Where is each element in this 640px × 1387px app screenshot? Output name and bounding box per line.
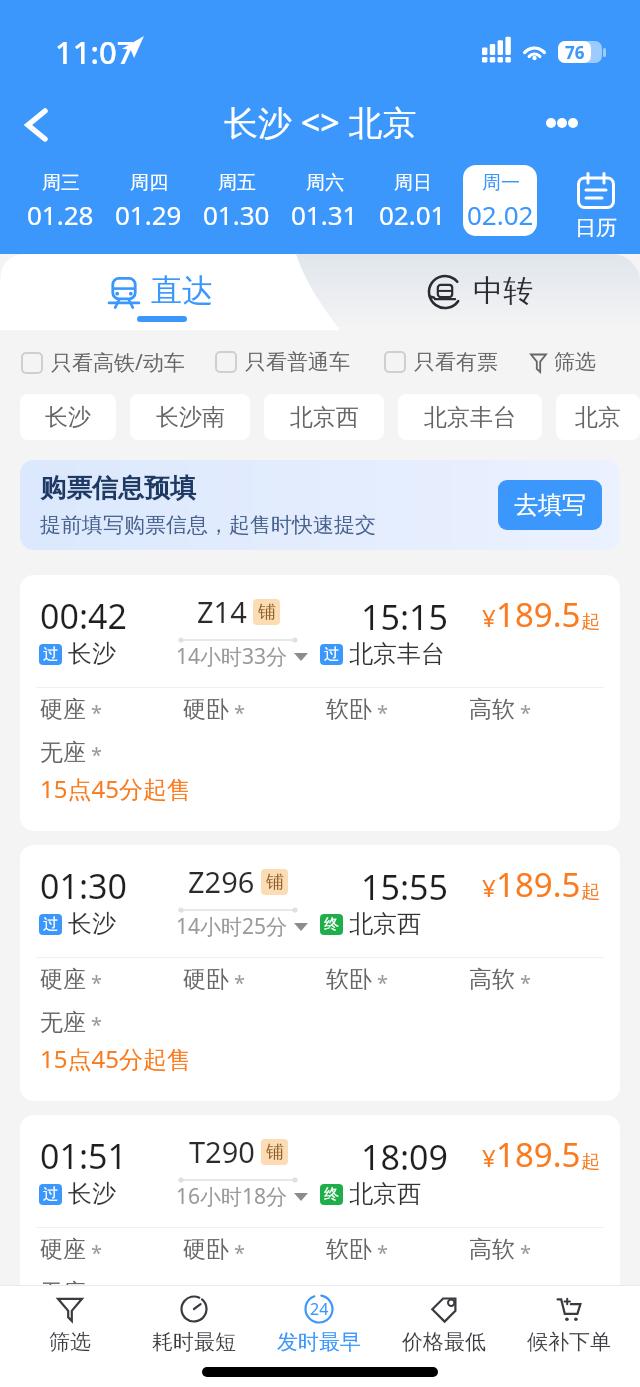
button[interactable]: 01:51 <box>20 1115 620 1371</box>
button[interactable]: 只看普通车 <box>215 349 350 375</box>
staticText: 189.5 <box>496 1132 581 1177</box>
staticText: 硬卧 <box>183 695 229 724</box>
button[interactable]: 00:42 <box>20 575 620 831</box>
button[interactable]: 购票信息预填 <box>20 460 620 550</box>
button[interactable]: 价格最低 <box>381 1286 506 1363</box>
button[interactable]: 长沙南 <box>130 394 250 440</box>
button[interactable]: 周日 <box>375 165 449 236</box>
staticText: 无座 <box>40 1008 86 1037</box>
button[interactable]: 耗时最短 <box>132 1286 256 1363</box>
staticText: 高软 <box>469 1235 515 1264</box>
staticText: 周五 <box>218 171 256 195</box>
staticText: 起 <box>581 1150 600 1174</box>
button[interactable]: 周六 <box>287 165 361 236</box>
staticText: * <box>520 969 532 996</box>
button[interactable]: 长沙 <box>20 394 116 440</box>
staticText: 价格最低 <box>402 1329 486 1355</box>
staticText: 189.5 <box>496 862 581 907</box>
staticText: 长沙 <box>68 1179 116 1209</box>
button[interactable]: More options <box>533 103 591 143</box>
staticText: 01.29 <box>115 197 182 232</box>
staticText: 14小时25分 <box>176 912 288 941</box>
staticText: * <box>91 1239 103 1266</box>
staticText: 11:07 <box>55 31 135 73</box>
staticText: * <box>91 1281 103 1308</box>
staticText: * <box>91 741 103 768</box>
staticText: * <box>377 969 389 996</box>
staticText: 硬卧 <box>183 1235 229 1264</box>
staticText: 去填写 <box>514 490 586 520</box>
staticText: 购票信息预填 <box>40 472 196 505</box>
staticText: 起 <box>581 610 600 634</box>
staticText: 耗时最短 <box>152 1329 236 1355</box>
staticText: 15:55 <box>361 864 448 910</box>
staticText: 过 <box>43 645 58 664</box>
staticText: 周一 <box>482 171 520 195</box>
button[interactable]: 周三 <box>23 165 97 236</box>
staticText: 无座 <box>40 738 86 767</box>
staticText: * <box>234 699 246 726</box>
staticText: Z14 <box>197 592 247 631</box>
staticText: ¥ <box>482 871 496 904</box>
button[interactable]: 北京西 <box>264 394 384 440</box>
staticText: 15点45分起售 <box>40 772 191 805</box>
staticText: 软卧 <box>326 965 372 994</box>
staticText: 铺 <box>266 1141 284 1164</box>
staticText: 铺 <box>266 871 284 894</box>
button[interactable]: 中转 <box>320 254 640 330</box>
staticText: 01:51 <box>40 1133 127 1179</box>
button[interactable]: 北京 <box>556 394 640 440</box>
staticText: 189.5 <box>496 592 581 637</box>
button[interactable]: 01:30 <box>20 845 620 1101</box>
staticText: 15:15 <box>361 594 448 640</box>
staticText: 高软 <box>469 695 515 724</box>
staticText: 长沙 <box>68 909 116 939</box>
staticText: 01.28 <box>27 197 94 232</box>
button[interactable]: 只看高铁/动车 <box>21 348 185 377</box>
button[interactable]: 直达 <box>0 254 320 330</box>
staticText: 起 <box>581 880 600 904</box>
staticText: * <box>234 969 246 996</box>
button[interactable]: 日历 <box>552 164 640 248</box>
staticText: 长沙 <box>45 403 91 432</box>
staticText: 无座 <box>40 1278 86 1307</box>
staticText: 候补下单 <box>527 1329 611 1355</box>
staticText: 长沙 <> 北京 <box>224 99 417 145</box>
staticText: * <box>377 699 389 726</box>
staticText: 硬座 <box>40 695 86 724</box>
staticText: 提前填写购票信息，起售时快速提交 <box>40 512 376 538</box>
staticText: 北京西 <box>349 1179 421 1209</box>
staticText: 16小时18分 <box>176 1182 288 1211</box>
button[interactable]: 候补下单 <box>506 1286 631 1363</box>
button[interactable]: 去填写 <box>498 480 602 530</box>
staticText: 过 <box>324 645 339 664</box>
staticText: * <box>520 699 532 726</box>
staticText: 长沙 <box>68 639 116 669</box>
staticText: 中转 <box>473 272 533 310</box>
staticText: 硬座 <box>40 965 86 994</box>
button[interactable]: 周一 <box>463 165 537 236</box>
button[interactable]: 北京丰台 <box>398 394 542 440</box>
button[interactable]: 周四 <box>111 165 185 236</box>
staticText: 过 <box>43 1185 58 1204</box>
button[interactable]: 筛选 <box>8 1286 132 1363</box>
staticText: 18:09 <box>361 1134 448 1180</box>
staticText: 76 <box>565 41 585 63</box>
button[interactable]: Back <box>9 97 65 153</box>
staticText: 只看高铁/动车 <box>51 348 185 377</box>
staticText: * <box>91 969 103 996</box>
button[interactable]: 只看有票 <box>384 349 498 375</box>
staticText: 日历 <box>575 215 617 241</box>
staticText: 周日 <box>394 171 432 195</box>
staticText: * <box>91 1011 103 1038</box>
staticText: ¥ <box>482 1141 496 1174</box>
staticText: * <box>91 699 103 726</box>
staticText: 硬座 <box>40 1235 86 1264</box>
staticText: 只看普通车 <box>245 349 350 375</box>
button[interactable]: 周五 <box>199 165 273 236</box>
staticText: 14小时33分 <box>176 642 288 671</box>
button[interactable]: 24 <box>256 1286 381 1363</box>
staticText: 周六 <box>306 171 344 195</box>
button[interactable]: 筛选 <box>530 349 596 375</box>
staticText: 铺 <box>258 601 276 624</box>
